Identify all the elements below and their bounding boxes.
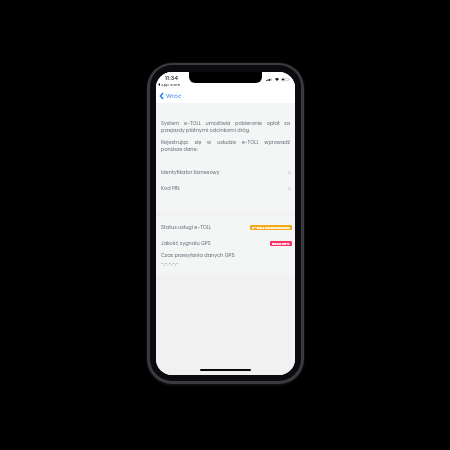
button[interactable]: Kod PIN bbox=[156, 180, 295, 196]
staticText: App Store bbox=[161, 82, 181, 87]
staticText: Kod PIN bbox=[161, 185, 180, 192]
button[interactable]: Identyfikator biznesowy bbox=[156, 164, 295, 180]
staticText: -,-,-,-,- bbox=[161, 260, 179, 267]
staticText: e-TOLL OCZEKIWANIE bbox=[252, 225, 290, 230]
staticText: Czas przesyłania danych GPS: bbox=[161, 252, 236, 259]
staticText: 11:34 bbox=[165, 74, 179, 82]
staticText: Status usługi e-TOLL bbox=[161, 224, 212, 231]
button[interactable]: Wróć bbox=[156, 90, 187, 102]
staticText: Jakość sygnału GPS bbox=[161, 240, 211, 247]
staticText: Wróć bbox=[166, 92, 182, 100]
staticText: System e-TOLL umożliwia pobieranie opłat… bbox=[161, 120, 290, 134]
staticText: Identyfikator biznesowy bbox=[161, 169, 220, 176]
staticText: Rejestrując się w usłudze e-TOLL wprowad… bbox=[161, 139, 290, 153]
staticText: BRAK GPS bbox=[272, 241, 290, 246]
